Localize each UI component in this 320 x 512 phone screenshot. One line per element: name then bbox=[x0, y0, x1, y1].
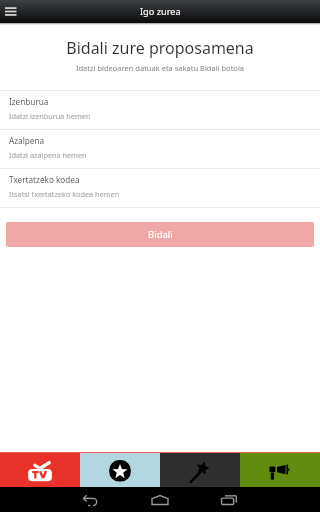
staticText: Txertatzeko kodea bbox=[9, 174, 80, 185]
staticText: Idatzi azalpena hemen bbox=[9, 150, 87, 160]
button[interactable]: Recents bbox=[207, 487, 251, 512]
button[interactable]: Home bbox=[138, 487, 182, 512]
button[interactable]: Azalpena bbox=[0, 130, 320, 168]
button[interactable]: Telebista bbox=[0, 452, 80, 487]
staticText: Idatzi izenburua hemen bbox=[9, 111, 91, 121]
staticText: Itsatsi txertatzeko kodea hemen bbox=[9, 189, 120, 199]
staticText: Igo zurea bbox=[140, 5, 181, 18]
button[interactable]: Bidali bbox=[6, 222, 314, 247]
button[interactable]: Igo zurea bbox=[240, 452, 320, 487]
button[interactable]: Izarrak bbox=[80, 452, 160, 487]
staticText: Azalpena bbox=[9, 135, 45, 146]
staticText: Bidali zure proposamena bbox=[0, 37, 320, 59]
button[interactable]: Magia bbox=[160, 452, 240, 487]
button[interactable]: Txertatzeko kodea bbox=[0, 169, 320, 207]
button[interactable]: Menu bbox=[0, 0, 22, 23]
staticText: Izenburua bbox=[9, 96, 49, 107]
button[interactable]: Izenburua bbox=[0, 91, 320, 129]
staticText: Bidali bbox=[148, 228, 173, 241]
button[interactable]: Back bbox=[69, 487, 113, 512]
staticText: Idatzi bideoaren datuak eta sakatu Bidal… bbox=[0, 63, 320, 73]
